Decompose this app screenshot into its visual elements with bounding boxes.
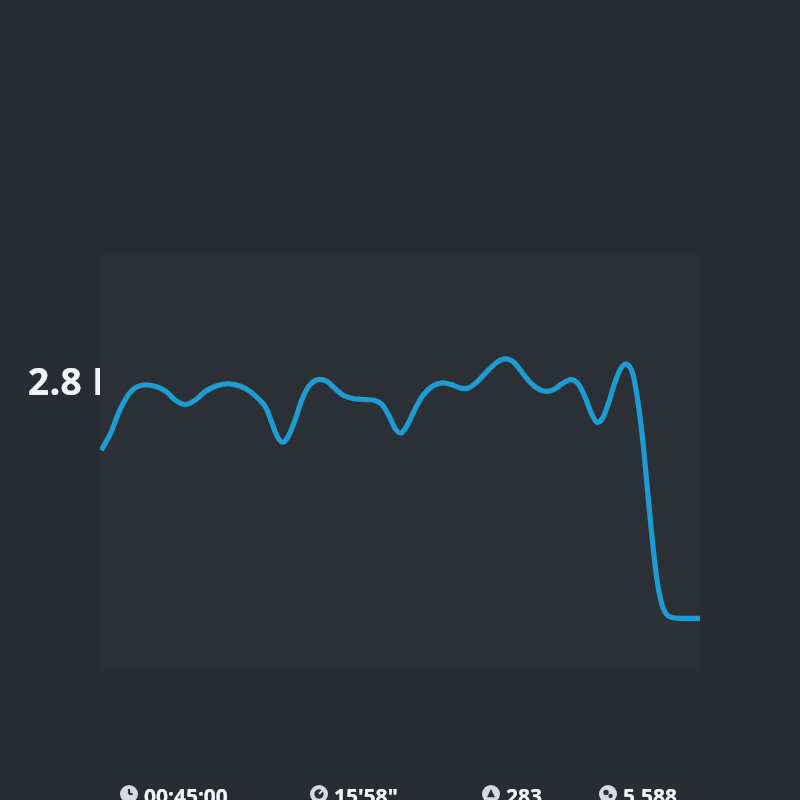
button[interactable]: 15'58" bbox=[310, 782, 482, 800]
staticText: 2.8 MI bbox=[28, 355, 143, 405]
staticText: 283 bbox=[506, 782, 543, 800]
staticText: by user bbox=[459, 360, 569, 401]
button[interactable]: Elevation chart bbox=[100, 254, 700, 670]
button[interactable]: by user bbox=[269, 360, 569, 401]
button[interactable]: 00:45:00 bbox=[120, 782, 310, 800]
button[interactable]: 5,588 bbox=[599, 782, 739, 800]
staticText: 15'58" bbox=[334, 782, 398, 800]
staticText: 00:45:00 bbox=[144, 782, 228, 800]
button[interactable]: 2.8 MI bbox=[28, 355, 268, 405]
staticText: 5,588 bbox=[623, 782, 678, 800]
button[interactable]: 283 bbox=[482, 782, 599, 800]
